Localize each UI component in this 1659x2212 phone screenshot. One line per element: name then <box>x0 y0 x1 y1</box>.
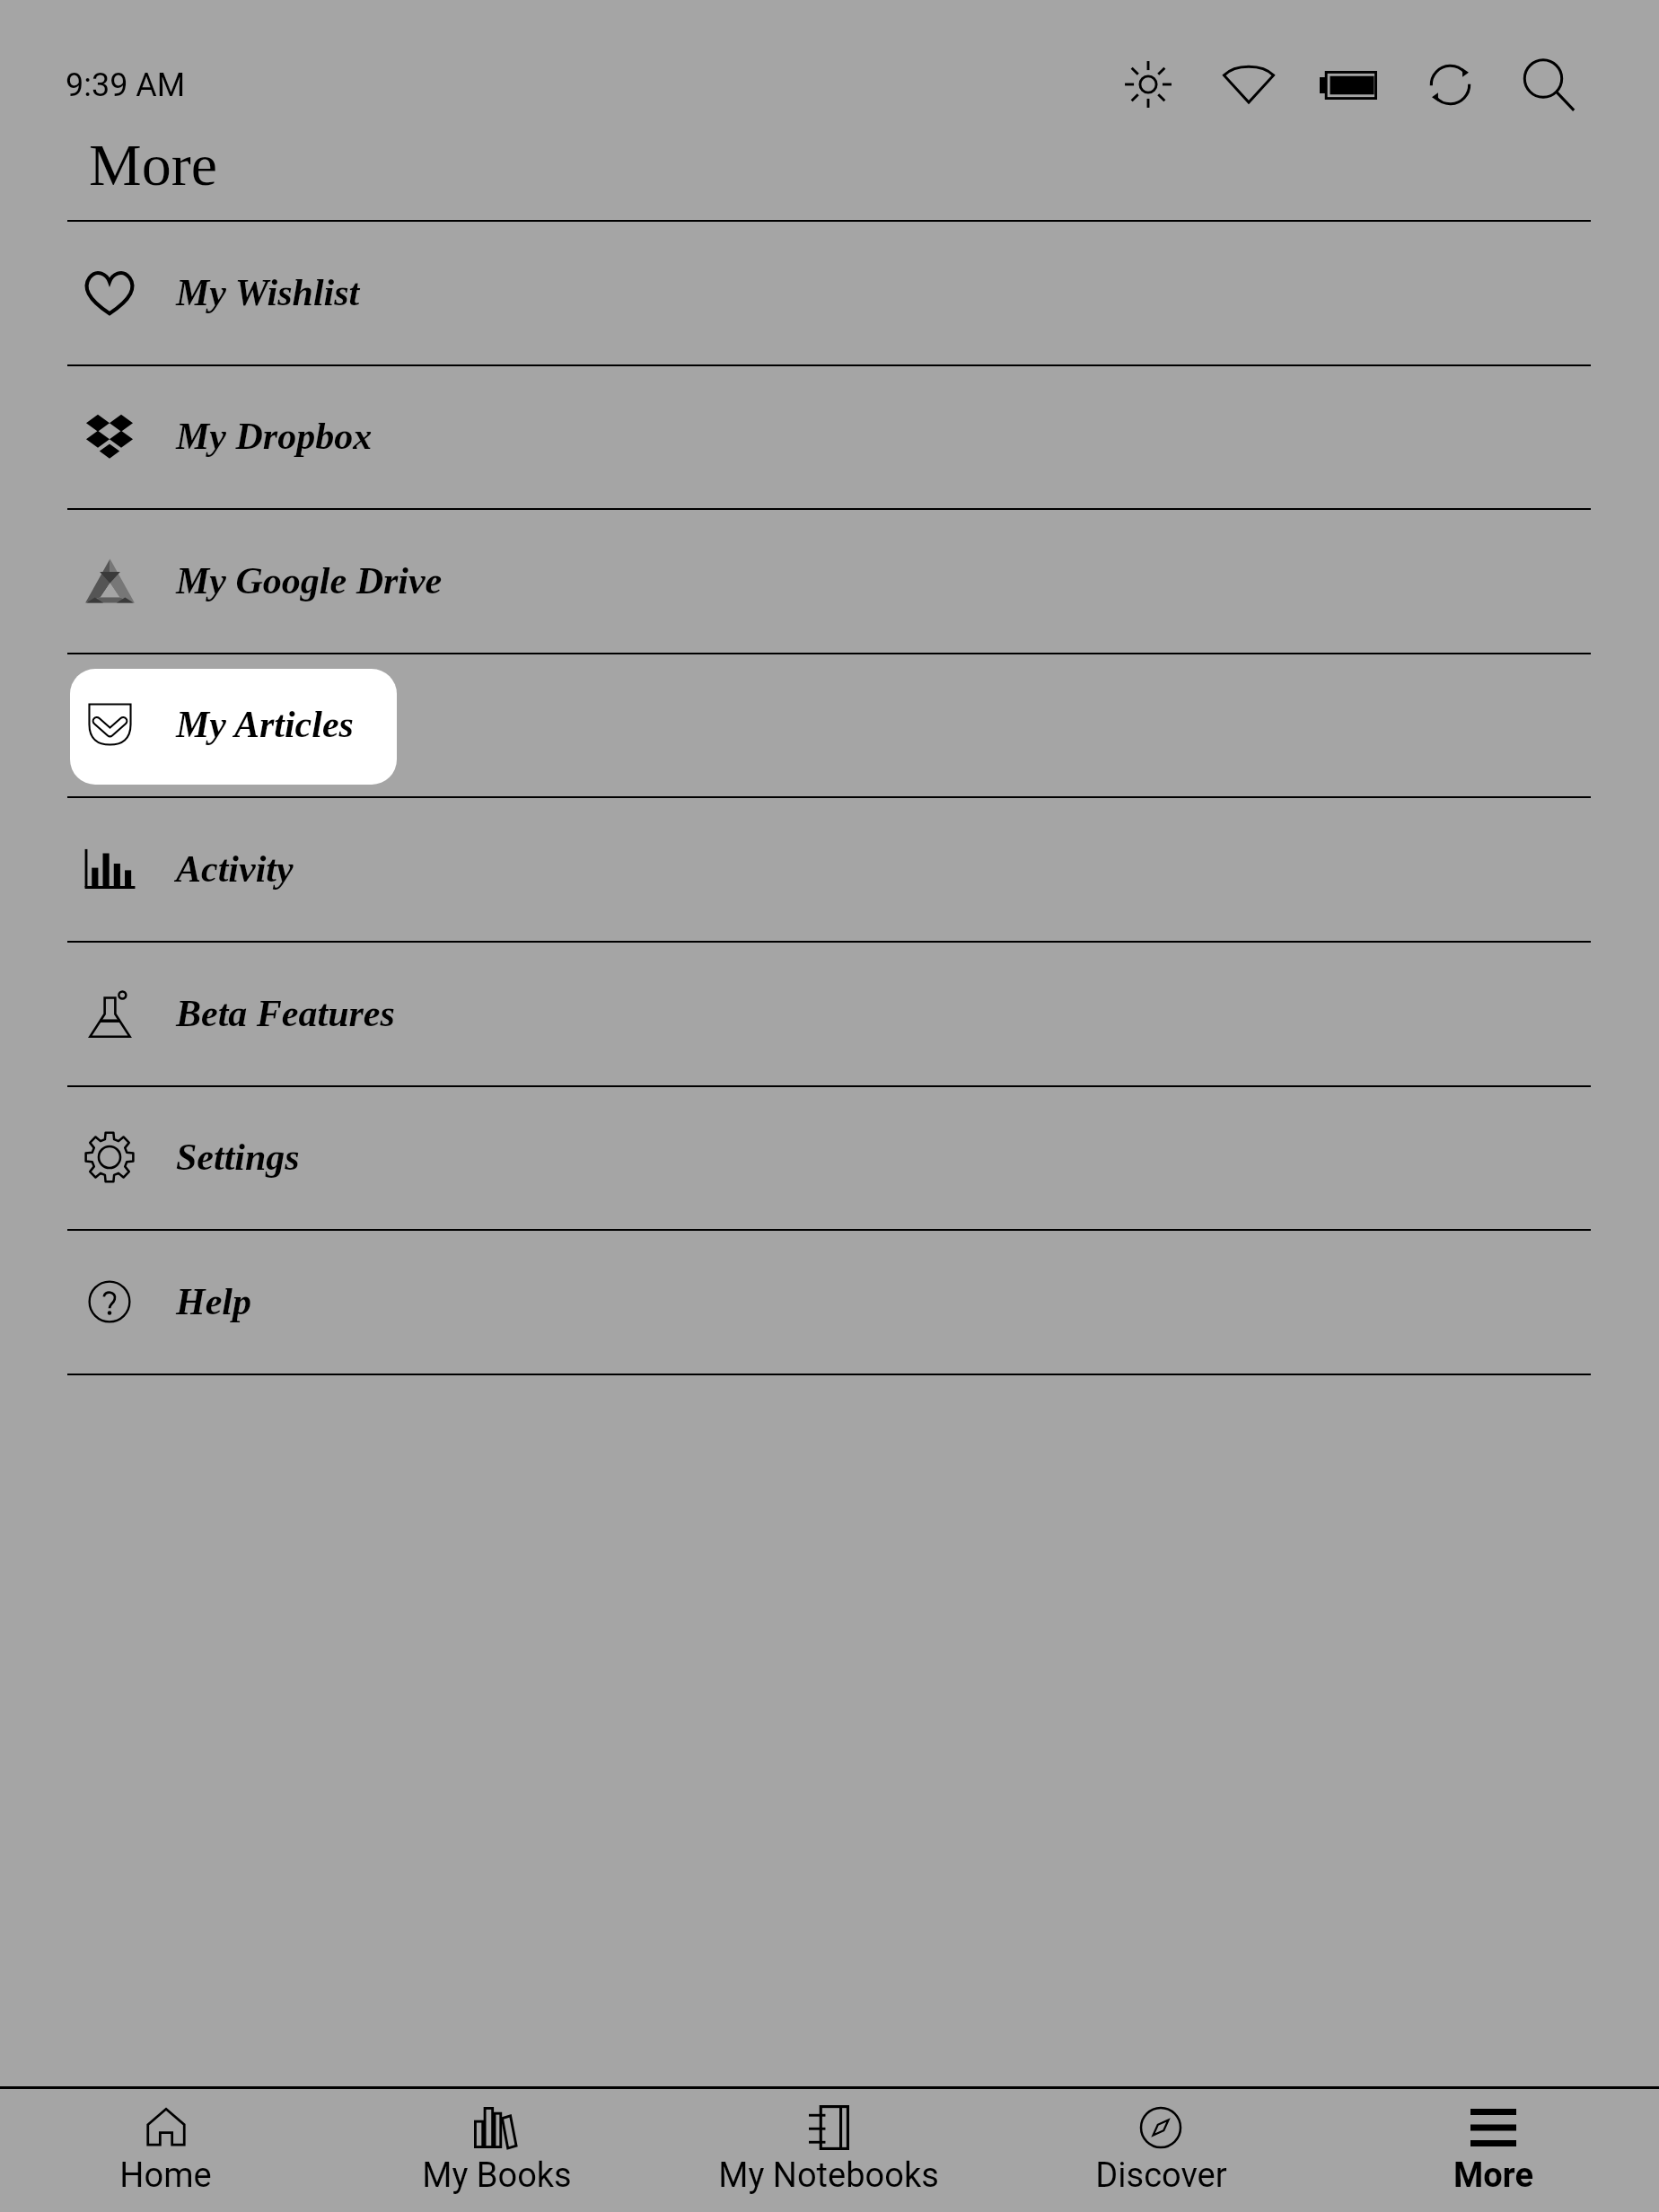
staticText: Discover <box>1095 2155 1227 2196</box>
button[interactable]: More <box>1327 2089 1659 2212</box>
staticText: Help <box>176 1281 251 1323</box>
button[interactable]: Settings <box>0 1085 1659 1229</box>
button[interactable]: My Articles <box>0 653 1659 796</box>
staticText: Settings <box>176 1137 300 1179</box>
staticText: My Notebooks <box>718 2155 939 2196</box>
staticText: Activity <box>176 848 294 891</box>
staticText: More <box>1453 2155 1533 2196</box>
button[interactable]: My Google Drive <box>0 508 1659 653</box>
button[interactable]: Wi-Fi <box>1202 36 1295 129</box>
button[interactable]: Search <box>1502 39 1595 132</box>
button[interactable]: My Notebooks <box>663 2089 995 2212</box>
button[interactable]: My Dropbox <box>0 364 1659 508</box>
button[interactable]: Activity <box>0 796 1659 941</box>
button[interactable]: My Books <box>331 2089 663 2212</box>
staticText: My Wishlist <box>176 272 360 314</box>
staticText: Beta Features <box>176 993 395 1035</box>
button[interactable]: Beta Features <box>0 941 1659 1085</box>
staticText: Home <box>119 2155 212 2196</box>
staticText: My Books <box>422 2155 572 2196</box>
button[interactable]: Home <box>0 2089 331 2212</box>
button[interactable]: Help <box>0 1229 1659 1374</box>
staticText: My Articles <box>176 704 354 746</box>
staticText: My Dropbox <box>176 416 373 458</box>
staticText: My Google Drive <box>176 560 443 602</box>
button[interactable]: Brightness <box>1102 38 1195 131</box>
button[interactable]: My Wishlist <box>0 220 1659 364</box>
staticText: 9:39 AM <box>66 66 186 104</box>
button[interactable]: Refresh <box>1403 38 1497 131</box>
button[interactable]: Battery <box>1302 39 1395 132</box>
staticText: More <box>89 132 217 197</box>
button[interactable]: Discover <box>995 2089 1327 2212</box>
